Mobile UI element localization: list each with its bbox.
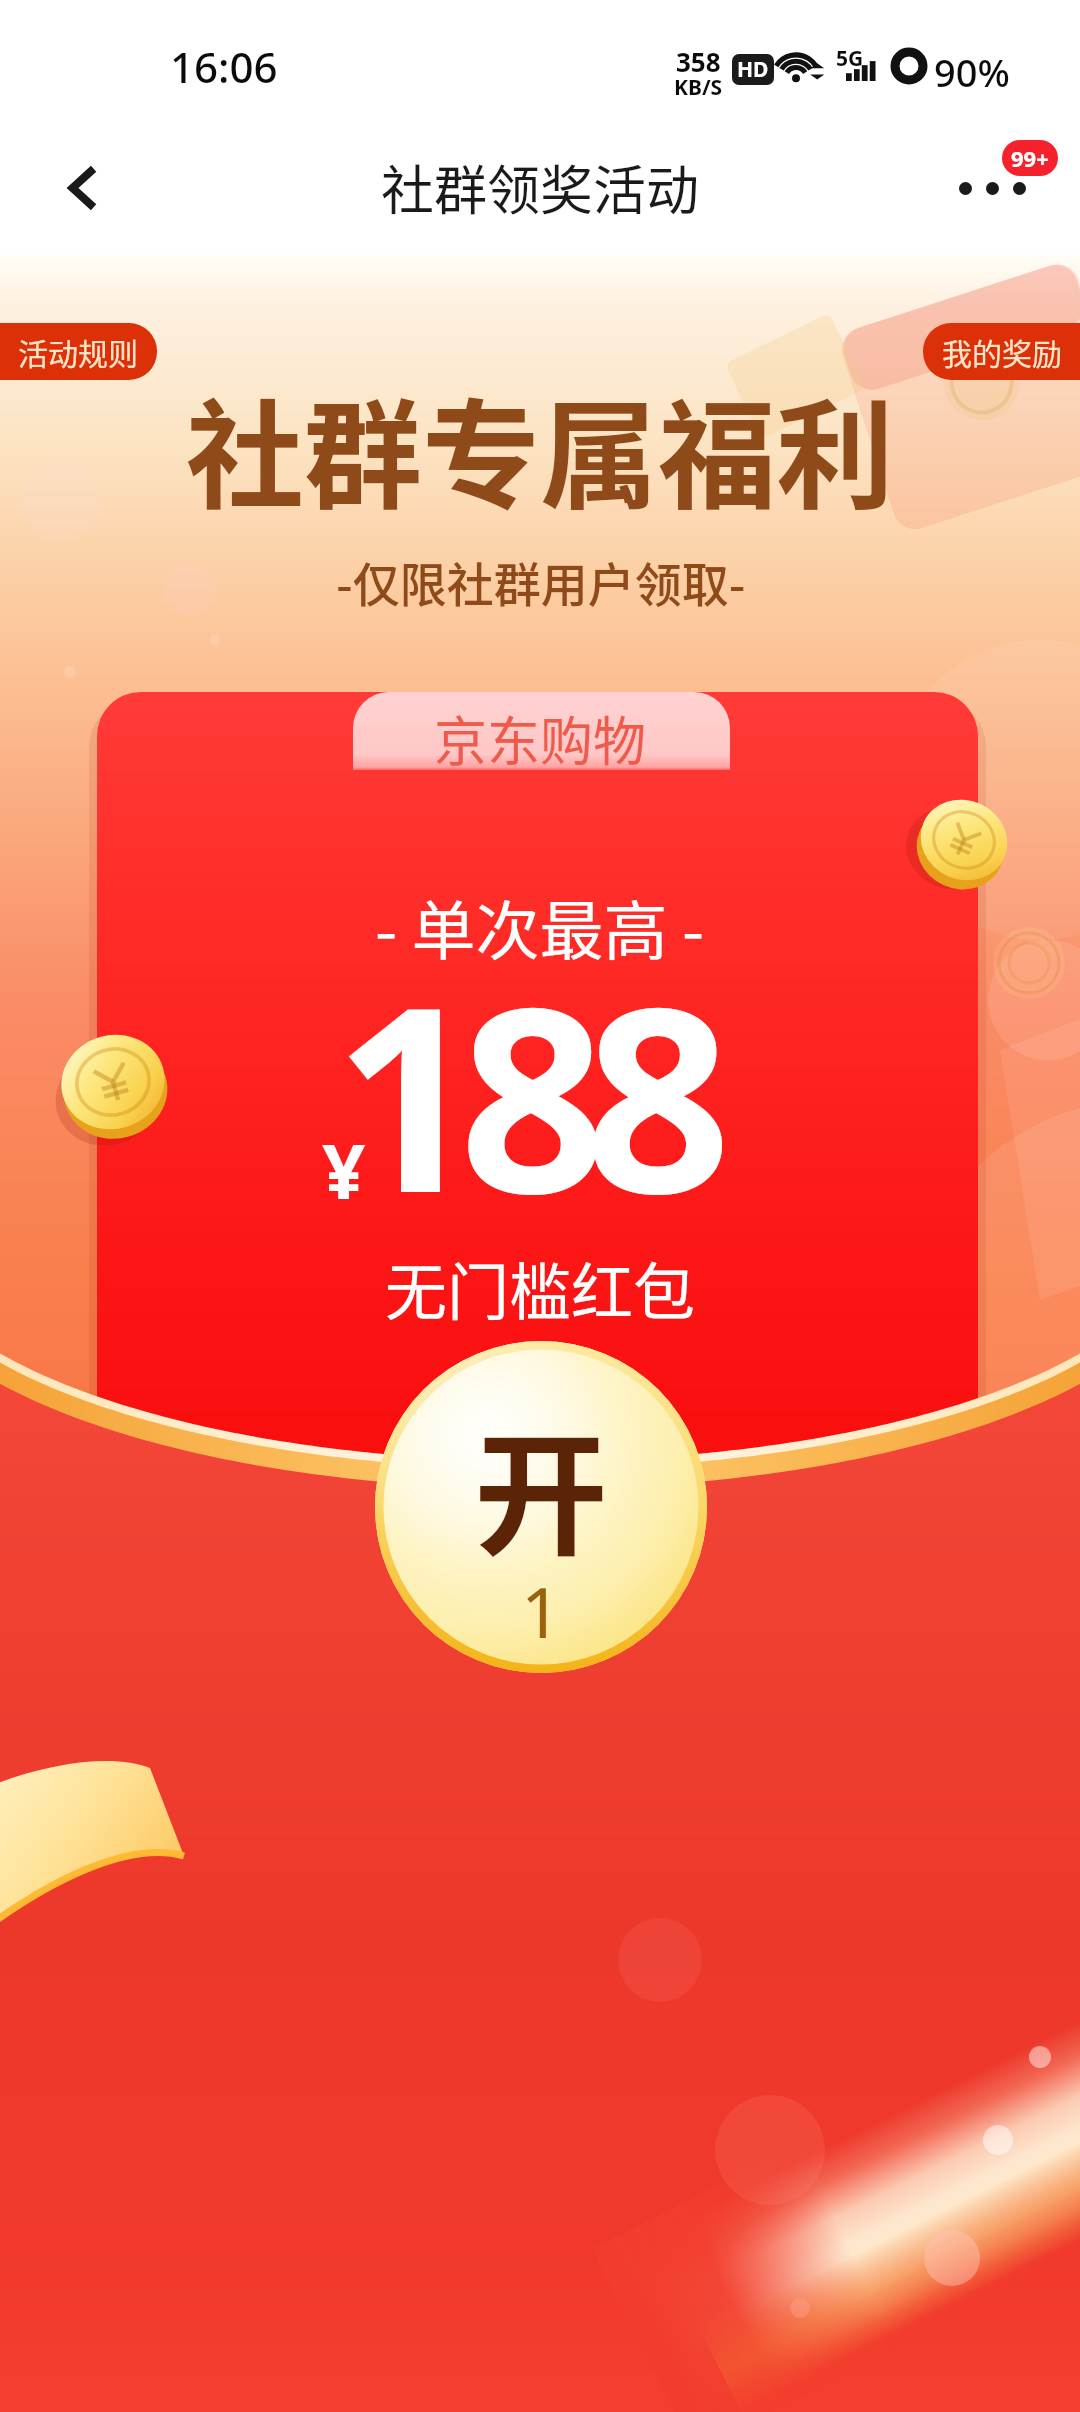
staticText: 5G bbox=[836, 44, 864, 73]
staticText: ¥ bbox=[322, 1118, 366, 1222]
button[interactable]: 我的奖励 bbox=[923, 323, 1080, 380]
staticText: HD bbox=[737, 55, 769, 84]
staticText: 16:06 bbox=[170, 38, 278, 95]
staticText: 我的奖励 bbox=[942, 330, 1062, 373]
staticText: 京东购物 bbox=[434, 700, 646, 777]
button[interactable]: 开 Open red packet bbox=[375, 1341, 707, 1673]
staticText: 无门槛红包 bbox=[385, 1243, 696, 1333]
staticText: 188 bbox=[334, 918, 711, 1267]
button[interactable]: 活动规则 bbox=[0, 323, 157, 380]
staticText: 开 bbox=[474, 1389, 609, 1583]
staticText: KB/S bbox=[674, 73, 723, 102]
staticText: 活动规则 bbox=[18, 330, 138, 373]
button[interactable]: Back bbox=[42, 146, 126, 230]
staticText: - 单次最高 - bbox=[375, 880, 705, 973]
staticText: 99+ bbox=[1011, 143, 1049, 173]
staticText: 社群领奖活动 bbox=[381, 149, 699, 226]
staticText: -仅限社群用户领取- bbox=[336, 547, 746, 615]
staticText: 1 bbox=[521, 1563, 562, 1658]
staticText: 社群专属福利 bbox=[186, 362, 895, 533]
staticText: 90% bbox=[934, 46, 1010, 98]
button[interactable]: More options bbox=[942, 138, 1042, 238]
staticText: 358 bbox=[676, 44, 721, 79]
